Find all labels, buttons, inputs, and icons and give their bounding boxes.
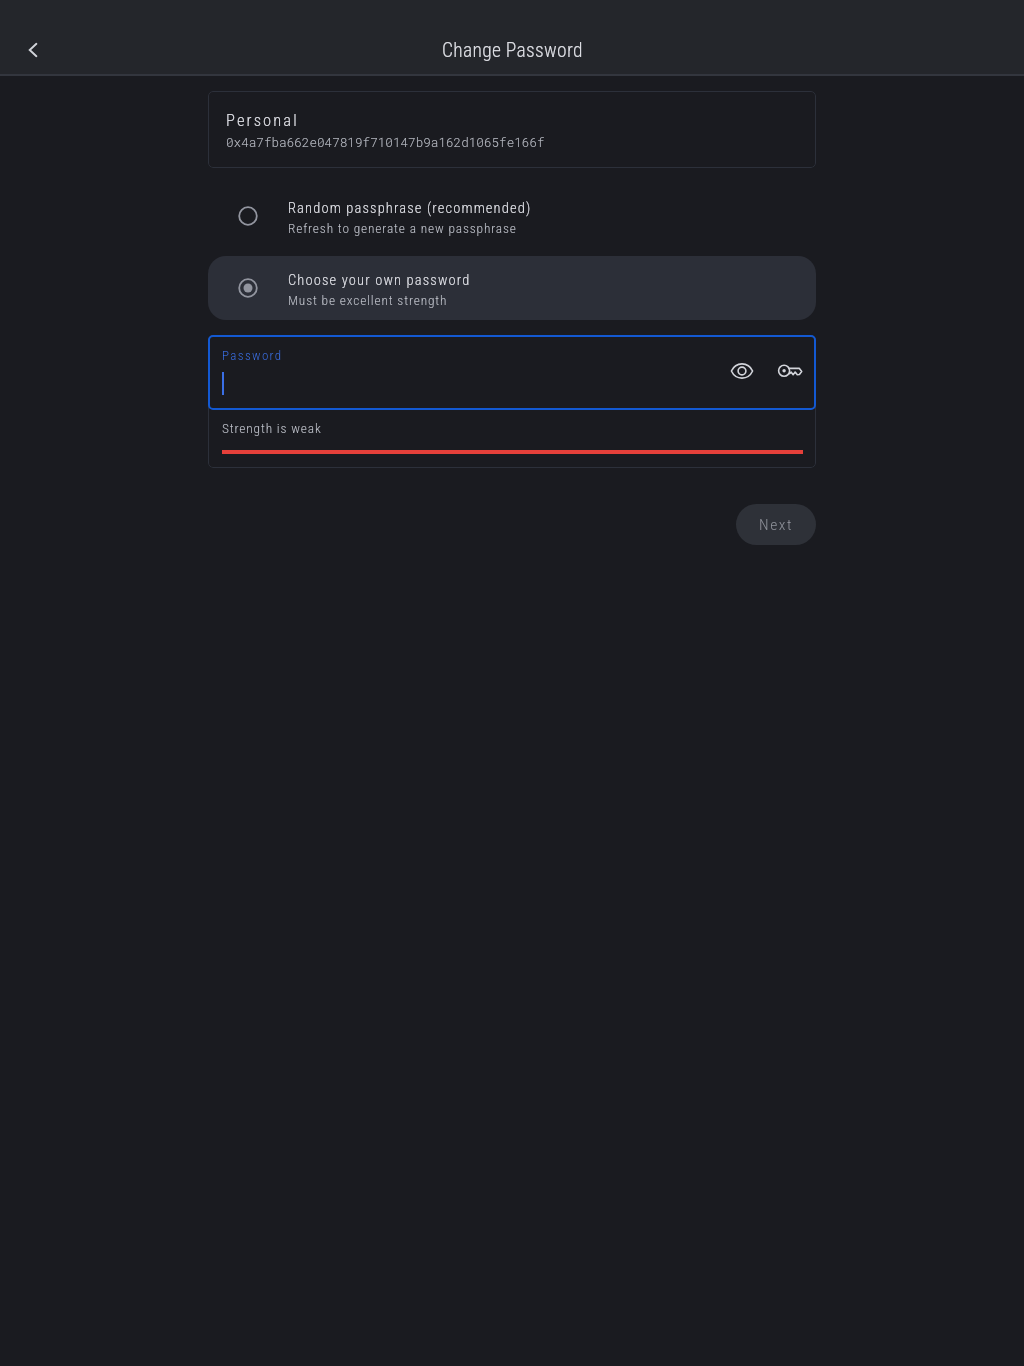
staticText: Change Password: [442, 39, 583, 62]
button[interactable]: Password: [208, 335, 816, 410]
staticText: Personal: [226, 111, 299, 130]
button[interactable]: Back: [13, 30, 53, 70]
button[interactable]: Generate password: [771, 352, 809, 390]
staticText: Random passphrase (recommended): [288, 200, 532, 217]
button[interactable]: Show password: [723, 352, 761, 390]
staticText: Next: [759, 516, 794, 534]
staticText: 0x4a7fba662e047819f710147b9a162d1065fe16…: [226, 134, 545, 151]
staticText: Refresh to generate a new passphrase: [288, 221, 517, 237]
button[interactable]: Choose your own password: [208, 256, 816, 320]
button[interactable]: Personal: [208, 91, 816, 168]
button[interactable]: Next: [736, 504, 816, 545]
staticText: Strength is weak: [222, 421, 322, 437]
staticText: Choose your own password: [288, 272, 471, 289]
staticText: Password: [222, 348, 283, 363]
button[interactable]: Random passphrase (recommended): [208, 184, 816, 248]
staticText: Must be excellent strength: [288, 293, 448, 309]
